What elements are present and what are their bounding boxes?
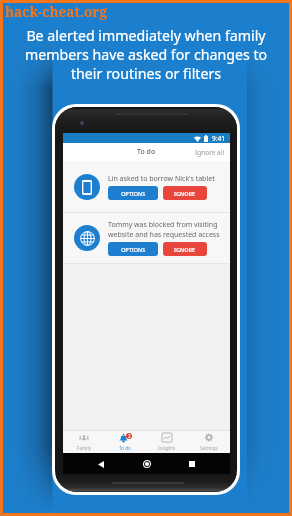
staticText: IGNORE bbox=[174, 190, 196, 197]
staticText: Lin asked to borrow Nick's tablet bbox=[108, 174, 215, 184]
button[interactable]: Home bbox=[140, 457, 154, 471]
button[interactable]: Insights bbox=[146, 431, 188, 453]
staticText: Settings bbox=[200, 445, 218, 451]
staticText: To do bbox=[137, 147, 156, 157]
staticText: Be alerted immediately when family membe… bbox=[23, 26, 269, 83]
button[interactable]: Ignore all bbox=[190, 144, 230, 161]
staticText: OPTIONS bbox=[121, 246, 146, 253]
staticText: Ignore all bbox=[195, 148, 225, 157]
staticText: website and has requested access bbox=[108, 230, 220, 240]
button[interactable]: 2 bbox=[104, 431, 146, 453]
button[interactable]: Back bbox=[94, 457, 108, 471]
staticText: 2 bbox=[128, 433, 131, 439]
button[interactable]: OPTIONS bbox=[108, 186, 158, 200]
staticText: To do bbox=[119, 445, 131, 451]
button[interactable]: Family bbox=[63, 431, 104, 453]
staticText: IGNORE bbox=[174, 246, 196, 253]
button[interactable]: Recents bbox=[185, 457, 199, 471]
button[interactable]: Lin asked to borrow Nick's tablet bbox=[63, 161, 230, 212]
staticText: hack-cheat.org bbox=[5, 2, 107, 21]
button[interactable]: IGNORE bbox=[163, 242, 207, 256]
staticText: OPTIONS bbox=[121, 190, 146, 197]
staticText: Tommy was blocked from visiting a bbox=[108, 220, 222, 230]
staticText: Family bbox=[77, 445, 91, 451]
button[interactable]: Tommy was blocked from visiting a bbox=[63, 213, 230, 263]
staticText: Insights bbox=[158, 445, 176, 451]
button[interactable]: Settings bbox=[188, 431, 230, 453]
button[interactable]: IGNORE bbox=[163, 186, 207, 200]
staticText: 9:41 bbox=[212, 134, 225, 143]
button[interactable]: OPTIONS bbox=[108, 242, 158, 256]
